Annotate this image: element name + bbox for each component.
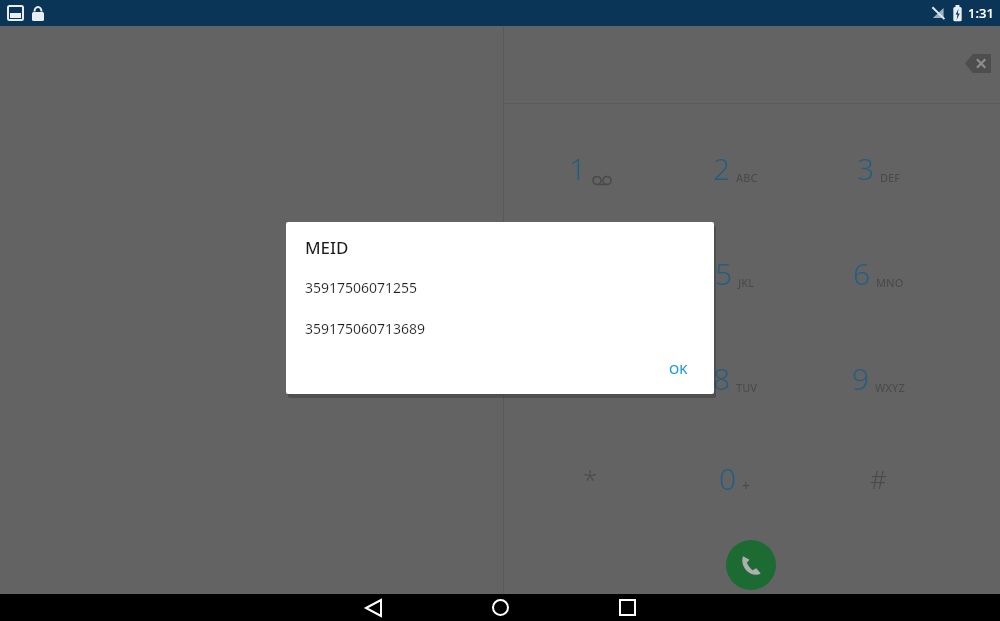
staticText: WXYZ — [875, 380, 905, 395]
button[interactable]: 5 — [675, 239, 795, 307]
staticText: # — [870, 461, 887, 496]
staticText: MEID — [305, 236, 349, 259]
staticText: 2 — [713, 148, 731, 189]
staticText: * — [583, 461, 598, 496]
button[interactable]: Call — [726, 540, 776, 590]
staticText: 1 — [569, 148, 587, 189]
staticText: TUV — [736, 380, 758, 395]
button[interactable]: OK — [657, 352, 700, 386]
button[interactable]: Recent apps — [603, 594, 651, 621]
staticText: 359175060713689 — [305, 319, 426, 338]
staticText: PQRS — [587, 380, 616, 395]
staticText: 1:31 — [968, 4, 994, 22]
button[interactable]: Backspace — [962, 48, 994, 78]
staticText: + — [742, 476, 751, 495]
button[interactable]: 0 — [675, 444, 795, 512]
staticText: 5 — [715, 253, 733, 294]
staticText: 7 — [564, 358, 582, 399]
staticText: 6 — [853, 253, 871, 294]
button[interactable]: 6 — [818, 239, 938, 307]
button[interactable]: Back — [349, 594, 397, 621]
staticText: 3 — [857, 148, 875, 189]
staticText: ABC — [736, 170, 758, 185]
button[interactable]: 3 — [818, 134, 938, 202]
staticText: 8 — [713, 358, 731, 399]
staticText: 0 — [719, 458, 737, 499]
button[interactable]: Home — [476, 594, 524, 621]
staticText: OK — [669, 360, 688, 378]
staticText: JKL — [738, 275, 755, 290]
button[interactable]: 8 — [675, 344, 795, 412]
button[interactable]: 1 — [530, 134, 650, 202]
button[interactable]: 2 — [675, 134, 795, 202]
staticText: MNO — [876, 275, 904, 290]
button[interactable]: 7 — [530, 344, 650, 412]
staticText: 9 — [852, 358, 870, 399]
button[interactable]: 9 — [818, 344, 938, 412]
staticText: DEF — [880, 170, 900, 185]
staticText: 35917506071255 — [305, 278, 418, 297]
